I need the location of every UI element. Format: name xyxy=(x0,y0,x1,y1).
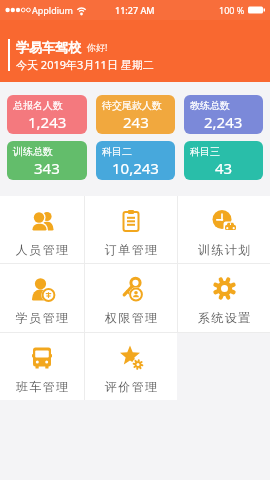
staticText: 系统设置 xyxy=(197,310,251,325)
staticText: 243 xyxy=(123,112,149,132)
staticText: 11:27 AM xyxy=(115,4,155,16)
staticText: 科目二 xyxy=(102,145,132,158)
staticText: 343 xyxy=(34,158,60,178)
staticText: 今天 2019年3月11日 星期二 xyxy=(16,57,154,72)
staticText: 总报名人数 xyxy=(13,99,63,112)
staticText: 2,243 xyxy=(204,112,243,132)
button[interactable]: 训练总数 xyxy=(7,141,87,180)
staticText: 待交尾款人数 xyxy=(102,99,162,112)
staticText: 评价管理 xyxy=(104,379,158,394)
button[interactable]: 人员管理 xyxy=(0,196,84,263)
staticText: 训练总数 xyxy=(13,145,53,158)
staticText: 学员管理 xyxy=(15,310,69,325)
staticText: 订单管理 xyxy=(104,242,158,257)
staticText: 班车管理 xyxy=(15,379,69,394)
staticText: 100 % xyxy=(219,4,245,16)
button[interactable]: 训练计划 xyxy=(178,196,270,263)
staticText: 训练计划 xyxy=(197,242,251,257)
staticText: 权限管理 xyxy=(104,310,158,325)
staticText: 学易车驾校 xyxy=(16,39,81,55)
button[interactable]: 评价管理 xyxy=(85,333,177,400)
button[interactable]: 系统设置 xyxy=(178,264,270,332)
button[interactable]: 科目三 xyxy=(184,141,263,180)
staticText: 人员管理 xyxy=(15,242,69,257)
button[interactable]: 科目二 xyxy=(96,141,175,180)
staticText: 1,243 xyxy=(28,112,67,132)
button[interactable]: 班车管理 xyxy=(0,333,84,400)
button[interactable]: 权限管理 xyxy=(85,264,177,332)
staticText: 43 xyxy=(215,158,233,178)
staticText: 科目三 xyxy=(190,145,220,158)
staticText: 你好! xyxy=(87,41,108,53)
button[interactable]: 订单管理 xyxy=(85,196,177,263)
button[interactable]: 总报名人数 xyxy=(7,95,87,134)
staticText: 教练总数 xyxy=(190,99,230,112)
staticText: Appldium xyxy=(32,4,73,16)
staticText: 10,243 xyxy=(112,158,159,178)
button[interactable]: 教练总数 xyxy=(184,95,263,134)
button[interactable]: 待交尾款人数 xyxy=(96,95,175,134)
button[interactable]: 学员管理 xyxy=(0,264,84,332)
